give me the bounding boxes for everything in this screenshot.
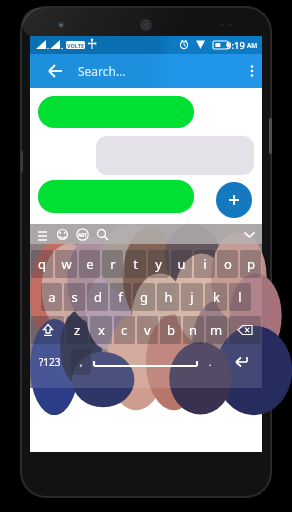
staticText: ART: [78, 232, 87, 238]
button[interactable]: r: [102, 250, 123, 278]
staticText: z: [74, 321, 81, 339]
button[interactable]: b: [160, 316, 181, 344]
button[interactable]: q: [31, 250, 53, 278]
staticText: s: [71, 288, 78, 306]
button[interactable]: [38, 96, 194, 128]
button[interactable]: l: [229, 283, 251, 311]
button[interactable]: Emoji: [56, 228, 69, 241]
staticText: x: [98, 321, 105, 339]
button[interactable]: Add: [216, 182, 252, 218]
button[interactable]: w: [55, 250, 77, 278]
button[interactable]: Comma: [71, 349, 91, 375]
button[interactable]: h: [157, 283, 179, 311]
button[interactable]: u: [171, 250, 192, 278]
staticText: Search…: [78, 63, 126, 79]
button[interactable]: o: [217, 250, 238, 278]
button[interactable]: Menu: [36, 228, 49, 241]
staticText: d: [94, 288, 102, 306]
button[interactable]: j: [181, 283, 203, 311]
staticText: h: [164, 288, 173, 306]
staticText: e: [86, 255, 94, 273]
staticText: a: [48, 288, 56, 306]
staticText: y: [155, 255, 162, 273]
button[interactable]: Hide keyboard: [243, 228, 256, 241]
staticText: o: [224, 255, 232, 273]
button[interactable]: f: [110, 283, 131, 311]
staticText: l: [238, 288, 242, 306]
staticText: u: [177, 255, 186, 273]
button[interactable]: p: [240, 250, 261, 278]
button[interactable]: Search: [96, 228, 109, 241]
staticText: n: [189, 321, 198, 339]
staticText: ?123: [39, 355, 61, 369]
staticText: 9:19: [226, 39, 245, 52]
button[interactable]: y: [148, 250, 169, 278]
button[interactable]: .: [200, 349, 220, 375]
staticText: q: [38, 255, 46, 273]
button[interactable]: Shift: [31, 316, 64, 344]
button[interactable]: m: [206, 316, 227, 344]
button[interactable]: Search…: [78, 54, 206, 88]
staticText: VOLTE: [67, 42, 85, 49]
staticText: p: [247, 255, 255, 273]
staticText: k: [213, 288, 220, 306]
button[interactable]: Backspace: [229, 316, 261, 344]
staticText: g: [140, 288, 148, 306]
button[interactable]: t: [125, 250, 146, 278]
button[interactable]: a: [41, 283, 62, 311]
staticText: c: [121, 321, 128, 339]
staticText: i: [203, 255, 207, 273]
staticText: ,: [80, 356, 83, 368]
staticText: r: [110, 255, 116, 273]
button[interactable]: ?123: [31, 349, 69, 375]
button[interactable]: i: [194, 250, 215, 278]
staticText: b: [167, 321, 175, 339]
button[interactable]: More options: [242, 54, 262, 88]
button[interactable]: k: [205, 283, 227, 311]
staticText: j: [190, 288, 194, 306]
button[interactable]: Back: [36, 54, 73, 88]
button[interactable]: v: [137, 316, 158, 344]
button[interactable]: e: [79, 250, 100, 278]
button[interactable]: z: [66, 316, 88, 344]
button[interactable]: [38, 180, 194, 213]
staticText: t: [133, 255, 138, 273]
staticText: m: [210, 321, 223, 339]
staticText: w: [61, 255, 72, 273]
button[interactable]: Space: [94, 349, 197, 375]
staticText: v: [144, 321, 151, 339]
staticText: f: [118, 288, 123, 306]
button[interactable]: [96, 136, 254, 175]
button[interactable]: d: [87, 283, 108, 311]
button[interactable]: x: [90, 316, 112, 344]
button[interactable]: Enter: [222, 349, 261, 375]
button[interactable]: g: [133, 283, 155, 311]
staticText: .: [209, 356, 212, 368]
staticText: AM: [247, 41, 258, 50]
button[interactable]: c: [114, 316, 135, 344]
button[interactable]: Art themes: [76, 228, 89, 241]
button[interactable]: n: [183, 316, 204, 344]
button[interactable]: s: [64, 283, 85, 311]
